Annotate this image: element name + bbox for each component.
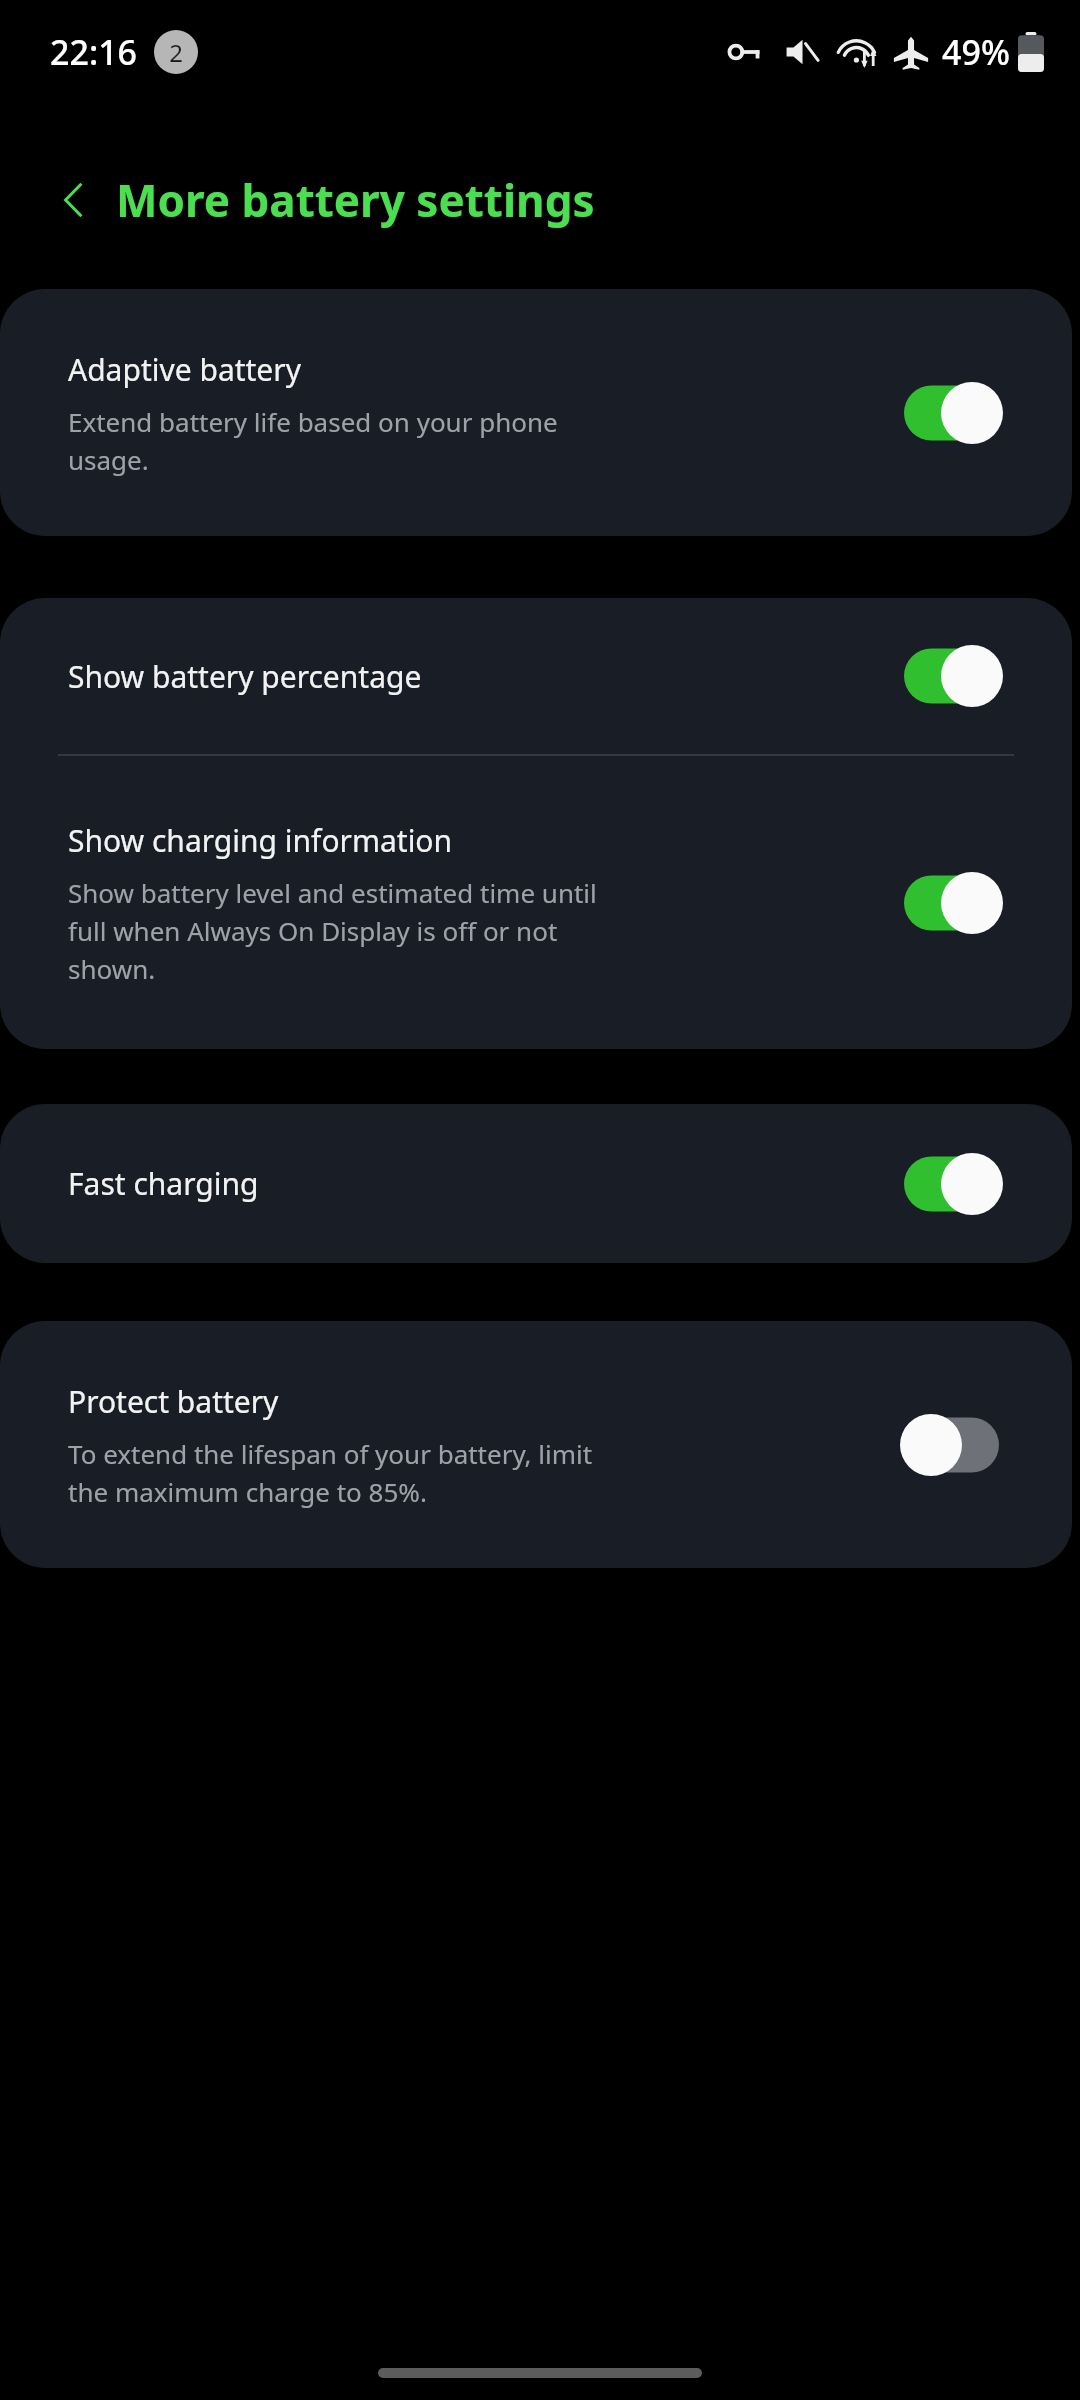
staticText: More battery settings	[116, 170, 595, 230]
button[interactable]: Show battery percentage	[904, 645, 1000, 707]
staticText: Adaptive battery	[68, 349, 301, 390]
staticText: 22:16	[50, 29, 138, 75]
staticText: 2	[169, 36, 183, 69]
button[interactable]: Adaptive battery	[0, 289, 1072, 536]
staticText: To extend the lifespan of your battery, …	[68, 1436, 593, 1509]
staticText: Fast charging	[68, 1163, 259, 1204]
staticText: Show battery level and estimated time un…	[68, 875, 597, 986]
button[interactable]: Show charging information	[904, 872, 1000, 934]
button[interactable]: Protect battery	[0, 1321, 1072, 1568]
staticText: 49%	[942, 29, 1010, 75]
button[interactable]: Protect battery	[904, 1414, 1000, 1476]
button[interactable]: Adaptive battery	[904, 382, 1000, 444]
staticText: Protect battery	[68, 1381, 279, 1422]
button[interactable]: Fast charging	[904, 1153, 1000, 1215]
staticText: Show charging information	[68, 820, 453, 861]
button[interactable]: Back	[46, 172, 102, 228]
staticText: Extend battery life based on your phone …	[68, 404, 558, 477]
staticText: Show battery percentage	[68, 656, 422, 697]
